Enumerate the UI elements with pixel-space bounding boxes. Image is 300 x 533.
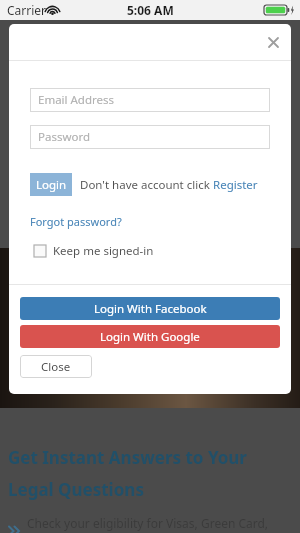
button[interactable]: Login — [30, 173, 72, 196]
staticText: Login With Google — [100, 329, 200, 345]
button[interactable]: Close dialog — [262, 31, 284, 53]
staticText: Password — [38, 129, 91, 145]
button[interactable]: Close — [20, 355, 92, 378]
staticText: Keep me signed-in — [53, 243, 154, 259]
staticText: Forgot password? — [30, 214, 122, 229]
staticText: Legal Questions — [8, 478, 144, 501]
button[interactable]: Login With Google — [20, 325, 280, 348]
button[interactable]: Password — [30, 125, 270, 149]
staticText: Get Instant Answers to Your — [8, 446, 247, 469]
staticText: Carrier — [7, 2, 47, 18]
staticText: Check your eligibility for Visas, Green … — [27, 515, 300, 533]
staticText: 5:06 AM — [127, 2, 174, 18]
staticText: Register — [213, 177, 258, 193]
staticText: Don't have account click — [80, 177, 213, 193]
staticText: Login — [36, 177, 67, 193]
staticText: Login With Facebook — [94, 301, 207, 317]
button[interactable]: Don't have account click — [80, 177, 258, 193]
button[interactable]: Login With Facebook — [20, 297, 280, 320]
button[interactable]: Forgot password? — [30, 214, 122, 229]
button[interactable]: Email Address — [30, 88, 270, 112]
button[interactable]: Keep me signed-in — [34, 243, 154, 259]
staticText: Close — [41, 359, 71, 375]
staticText: Email Address — [38, 92, 115, 108]
